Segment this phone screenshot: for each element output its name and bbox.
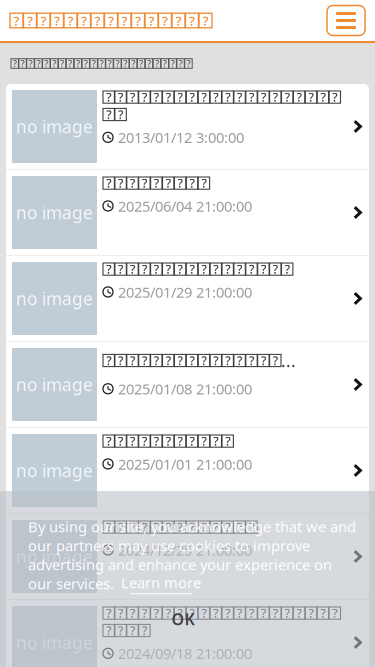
- staticText: 2024/09/18 21:00:00: [118, 644, 252, 663]
- staticText: By using our site, you acknowledge that …: [28, 517, 356, 536]
- staticText: ?: [201, 519, 206, 535]
- staticText: ?: [115, 57, 119, 70]
- button[interactable]: no image: [6, 170, 369, 255]
- staticText: ?: [201, 89, 206, 105]
- staticText: ?: [261, 605, 266, 621]
- staticText: ?: [332, 89, 337, 105]
- staticText: ?: [320, 605, 325, 621]
- staticText: ?: [142, 261, 147, 277]
- staticText: 2025/01/29 21:00:00: [118, 282, 252, 302]
- staticText: ?: [285, 261, 290, 277]
- staticText: ?: [261, 89, 266, 105]
- staticText: ?: [213, 89, 218, 105]
- staticText: ?: [13, 12, 19, 29]
- staticText: ?: [118, 352, 123, 368]
- staticText: 2013/01/12 3:00:00: [118, 128, 244, 147]
- staticText: ?: [54, 12, 60, 29]
- staticText: ?: [249, 519, 254, 535]
- staticText: ?: [107, 57, 111, 70]
- staticText: 2025/01/08 21:00:00: [118, 379, 252, 398]
- staticText: ?: [186, 57, 190, 70]
- staticText: ?: [100, 57, 104, 70]
- staticText: ?: [163, 57, 167, 70]
- staticText: ?: [225, 605, 230, 621]
- staticText: ?: [118, 106, 123, 122]
- staticText: ?: [166, 519, 171, 535]
- staticText: ?: [108, 12, 114, 29]
- staticText: ?: [106, 106, 111, 122]
- staticText: ?: [118, 175, 123, 191]
- staticText: ?: [225, 352, 230, 368]
- staticText: ?: [130, 352, 135, 368]
- staticText: ?: [28, 57, 32, 70]
- staticText: ?: [121, 12, 127, 29]
- staticText: ?: [178, 175, 183, 191]
- staticText: ?: [178, 89, 183, 105]
- staticText: ?: [123, 57, 127, 70]
- staticText: ...: [281, 349, 296, 372]
- staticText: ?: [213, 519, 218, 535]
- staticText: no image: [16, 201, 93, 224]
- staticText: ?: [106, 261, 111, 277]
- staticText: ?: [148, 12, 154, 29]
- staticText: our partners may use cookies to improve: [28, 536, 310, 555]
- staticText: ?: [142, 433, 147, 449]
- button[interactable]: no image: [6, 84, 369, 169]
- staticText: ?: [213, 261, 218, 277]
- staticText: ?: [130, 433, 135, 449]
- staticText: advertising and enhance your experience …: [28, 555, 332, 574]
- staticText: ?: [131, 57, 135, 70]
- staticText: ?: [178, 605, 183, 621]
- staticText: ?: [52, 57, 56, 70]
- staticText: no image: [16, 287, 93, 310]
- staticText: ?: [106, 433, 111, 449]
- staticText: no image: [16, 373, 93, 396]
- staticText: ?: [154, 519, 159, 535]
- staticText: ?: [273, 605, 278, 621]
- staticText: ?: [147, 57, 151, 70]
- staticText: ?: [166, 175, 171, 191]
- staticText: ?: [175, 12, 181, 29]
- staticText: ?: [285, 89, 290, 105]
- staticText: ?: [225, 433, 230, 449]
- staticText: ?: [171, 57, 175, 70]
- staticText: ?: [179, 57, 183, 70]
- button[interactable]: OK: [158, 608, 208, 630]
- staticText: ?: [297, 89, 302, 105]
- button[interactable]: no image: [6, 342, 369, 427]
- staticText: 2025/01/01 21:00:00: [118, 454, 252, 474]
- staticText: ?: [154, 352, 159, 368]
- staticText: ?: [166, 605, 171, 621]
- button[interactable]: no image: [6, 600, 369, 667]
- staticText: ?: [308, 605, 313, 621]
- button[interactable]: no image: [6, 428, 369, 513]
- staticText: ?: [135, 12, 141, 29]
- staticText: ?: [213, 352, 218, 368]
- staticText: 2025/06/04 21:00:00: [118, 196, 252, 216]
- staticText: ?: [249, 605, 254, 621]
- button[interactable]: no image: [6, 256, 369, 341]
- staticText: ?: [142, 175, 147, 191]
- button[interactable]: Learn more: [121, 573, 201, 594]
- staticText: ?: [237, 605, 242, 621]
- button[interactable]: Menu: [327, 5, 365, 35]
- staticText: ?: [202, 12, 208, 29]
- staticText: ?: [118, 89, 123, 105]
- staticText: ?: [106, 519, 111, 535]
- staticText: ?: [40, 12, 46, 29]
- button[interactable]: no image: [6, 514, 369, 599]
- staticText: ?: [249, 261, 254, 277]
- staticText: ?: [178, 261, 183, 277]
- staticText: ?: [189, 605, 194, 621]
- staticText: no image: [16, 545, 93, 568]
- staticText: ?: [166, 261, 171, 277]
- staticText: ?: [106, 352, 111, 368]
- staticText: ?: [201, 261, 206, 277]
- staticText: ?: [189, 433, 194, 449]
- staticText: ?: [94, 12, 100, 29]
- staticText: ?: [178, 352, 183, 368]
- staticText: ?: [106, 175, 111, 191]
- staticText: ?: [130, 261, 135, 277]
- staticText: ?: [21, 57, 25, 70]
- staticText: ?: [273, 352, 278, 368]
